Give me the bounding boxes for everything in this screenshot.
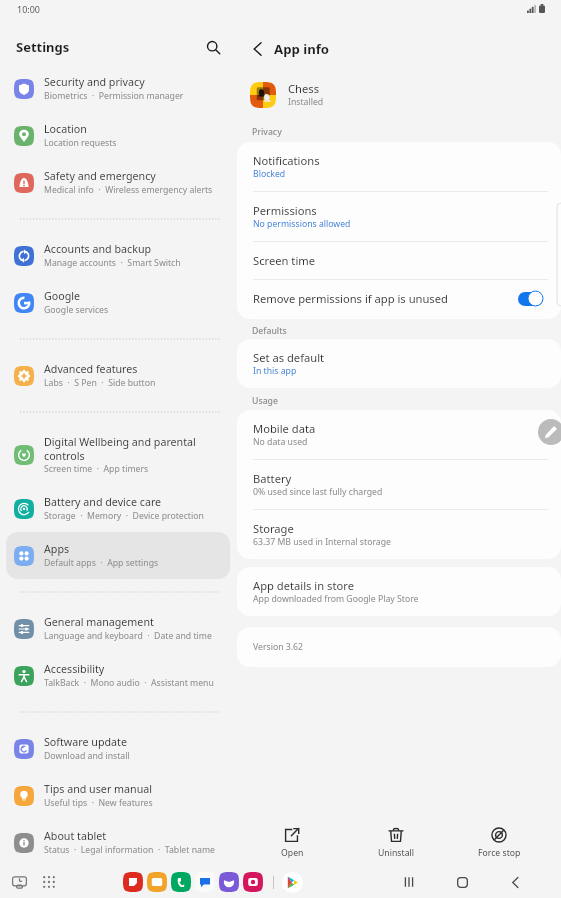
button[interactable]: camera (243, 872, 263, 892)
button[interactable]: Notifications (237, 142, 561, 192)
staticText: Storage (253, 521, 294, 536)
staticText: Advanced features (44, 362, 138, 377)
staticText: Chess (288, 81, 320, 96)
staticText: Biometrics · Permission manager (44, 90, 184, 102)
staticText: Status · Legal information · Tablet name (44, 844, 215, 856)
button[interactable]: msg (195, 872, 215, 892)
button[interactable]: Security and privacy (6, 65, 230, 112)
button[interactable]: Search (200, 34, 226, 60)
button[interactable]: All apps (38, 871, 60, 893)
staticText: Apps (44, 542, 70, 557)
staticText: Language and keyboard · Date and time (44, 630, 212, 642)
button[interactable]: About tablet (6, 819, 230, 866)
staticText: Set as default (253, 350, 325, 365)
staticText: Blocked (253, 168, 286, 180)
staticText: Location (44, 122, 87, 137)
staticText: 63.37 MB used in Internal storage (253, 536, 391, 548)
staticText: Manage accounts · Smart Switch (44, 257, 181, 269)
staticText: Force stop (478, 847, 521, 859)
staticText: Settings (16, 38, 70, 56)
button[interactable]: Uninstall (348, 821, 444, 865)
button[interactable]: Advanced features (6, 352, 230, 399)
staticText: App info (274, 40, 330, 58)
staticText: Security and privacy (44, 75, 145, 90)
staticText: In this app (253, 365, 297, 377)
staticText: No data used (253, 436, 308, 448)
staticText: Location requests (44, 137, 117, 149)
button[interactable]: Back (502, 869, 528, 895)
staticText: Permissions (253, 203, 317, 218)
staticText: Battery and device care (44, 495, 162, 510)
staticText: Defaults (252, 325, 287, 337)
button[interactable]: Taskbar (8, 871, 30, 893)
staticText: Useful tips · New features (44, 797, 153, 809)
button[interactable]: Accounts and backup (6, 232, 230, 279)
button[interactable]: Open (244, 821, 340, 865)
staticText: Open (281, 847, 304, 859)
staticText: Installed (288, 96, 324, 108)
button[interactable]: folder (147, 872, 167, 892)
button[interactable]: Tips and user manual (6, 772, 230, 819)
button[interactable]: Play Store (282, 872, 303, 893)
button[interactable]: Location (6, 112, 230, 159)
staticText: Battery (253, 471, 292, 486)
button[interactable]: Back (245, 36, 271, 62)
staticText: Notifications (253, 153, 320, 168)
staticText: Download and install (44, 750, 130, 762)
staticText: App details in store (253, 578, 354, 593)
staticText: Tips and user manual (44, 782, 153, 797)
button[interactable]: Digital Wellbeing and parental controls (6, 425, 230, 485)
staticText: Safety and emergency (44, 169, 156, 184)
button[interactable]: Battery and device care (6, 485, 230, 532)
staticText: Default apps · App settings (44, 557, 159, 569)
staticText: Google services (44, 304, 109, 316)
staticText: Screen time · App timers (44, 463, 149, 475)
button[interactable]: Permissions (237, 192, 561, 242)
staticText: 0% used since last fully charged (253, 486, 383, 498)
staticText: About tablet (44, 829, 107, 844)
staticText: App downloaded from Google Play Store (253, 593, 419, 605)
button[interactable]: Remove permissions if app is unused (237, 280, 561, 319)
button[interactable]: General management (6, 605, 230, 652)
button[interactable]: Chess (236, 70, 561, 117)
button[interactable]: Google (6, 279, 230, 326)
button[interactable]: Safety and emergency (6, 159, 230, 206)
button[interactable]: App details in store (237, 567, 561, 616)
staticText: Version 3.62 (253, 641, 304, 653)
button[interactable]: Recent apps (396, 869, 422, 895)
button[interactable]: Mobile data (237, 410, 561, 460)
staticText: Privacy (252, 126, 282, 138)
staticText: Remove permissions if app is unused (253, 291, 448, 306)
button[interactable]: Edit (538, 419, 561, 445)
staticText: Digital Wellbeing and parental controls (44, 435, 224, 463)
button[interactable]: internet (219, 872, 239, 892)
button[interactable]: note (123, 872, 143, 892)
staticText: Google (44, 289, 81, 304)
staticText: Medical info · Wireless emergency alerts (44, 184, 213, 196)
staticText: Software update (44, 735, 127, 750)
staticText: Accounts and backup (44, 242, 152, 257)
staticText: 10:00 (17, 3, 41, 15)
button[interactable]: Storage (237, 510, 561, 559)
staticText: Labs · S Pen · Side button (44, 377, 156, 389)
staticText: Accessibility (44, 662, 105, 677)
button[interactable]: Set as default (237, 339, 561, 388)
button[interactable]: Screen time (237, 242, 561, 280)
button[interactable]: Accessibility (6, 652, 230, 699)
staticText: Storage · Memory · Device protection (44, 510, 204, 522)
staticText: General management (44, 615, 154, 630)
staticText: Uninstall (378, 847, 414, 859)
staticText: Screen time (253, 253, 316, 268)
button[interactable]: Battery (237, 460, 561, 510)
staticText: No permissions allowed (253, 218, 351, 230)
button[interactable]: Software update (6, 725, 230, 772)
staticText: TalkBack · Mono audio · Assistant menu (44, 677, 214, 689)
staticText: Mobile data (253, 421, 316, 436)
button[interactable]: phone (171, 872, 191, 892)
button[interactable]: Force stop (451, 821, 547, 865)
button[interactable]: Home (449, 869, 475, 895)
staticText: Usage (252, 395, 278, 407)
button[interactable]: Apps (6, 532, 230, 579)
